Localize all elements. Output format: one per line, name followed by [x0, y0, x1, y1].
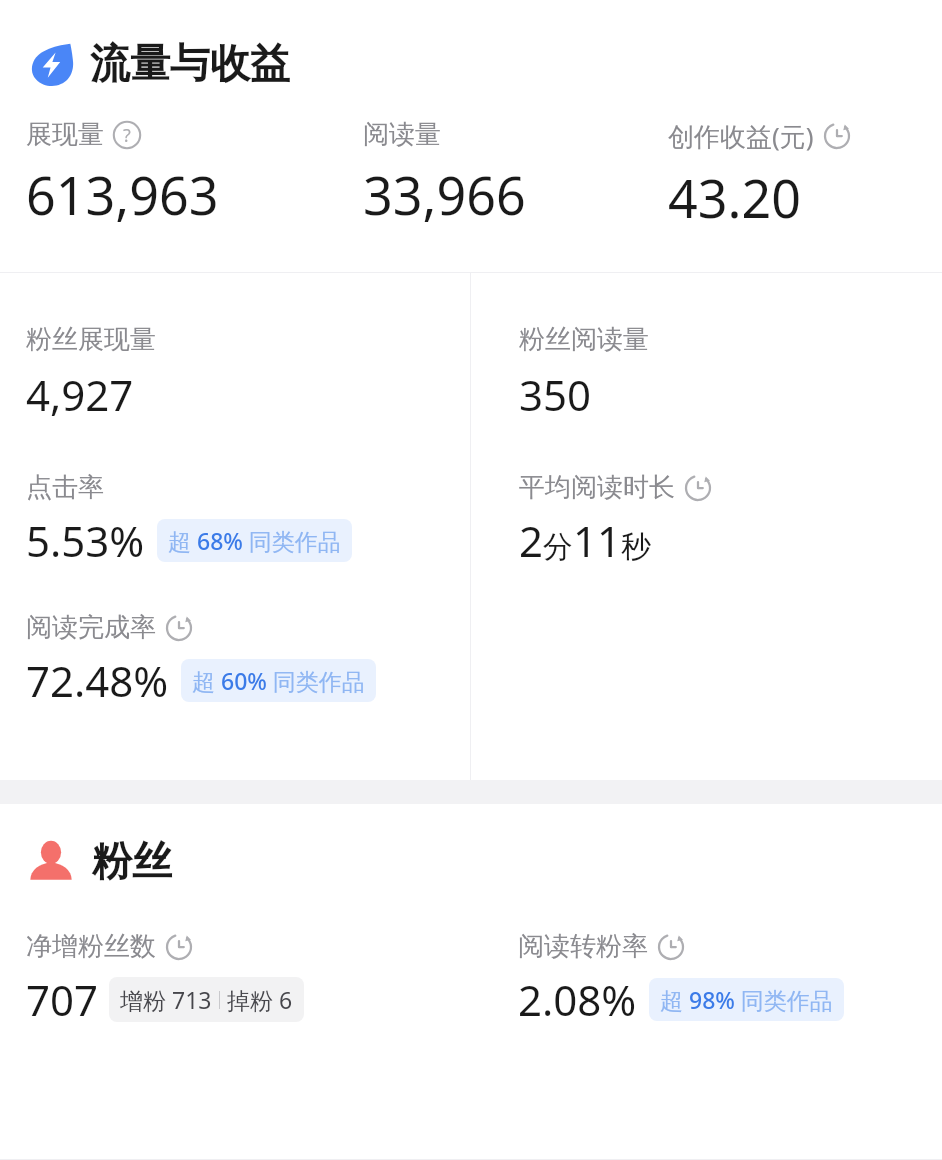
staticText: 33,966 [363, 159, 526, 230]
staticText: 流量与收益 [90, 38, 290, 88]
button[interactable]: 超 68% 同类作品 [157, 519, 352, 562]
staticText: 平均阅读时长 [519, 471, 675, 504]
other: 说明 [112, 120, 142, 150]
staticText: 展现量 [26, 118, 104, 151]
staticText: 2.08% [518, 971, 637, 1028]
staticText: 超 60% 同类作品 [192, 665, 365, 696]
staticText: 43.20 [668, 162, 801, 233]
staticText: 粉丝阅读量 [519, 323, 649, 356]
staticText: 粉丝 [92, 836, 172, 886]
staticText: 613,963 [26, 159, 219, 230]
button[interactable]: 超 98% 同类作品 [649, 978, 844, 1021]
button[interactable]: 超 60% 同类作品 [181, 659, 376, 702]
staticText: 超 68% 同类作品 [168, 525, 341, 556]
staticText: 创作收益(元) [668, 118, 814, 154]
staticText: 4,927 [26, 366, 134, 423]
staticText: 阅读转粉率 [518, 930, 648, 963]
staticText: 点击率 [26, 471, 104, 504]
staticText: 707 [26, 971, 99, 1028]
staticText: 净增粉丝数 [26, 930, 156, 963]
staticText: 阅读完成率 [26, 611, 156, 644]
staticText: 掉粉 6 [227, 984, 293, 1015]
staticText: 350 [519, 366, 592, 423]
button[interactable]: 增粉 713 [109, 977, 304, 1022]
staticText: 72.48% [26, 652, 169, 709]
staticText: 5.53% [26, 512, 145, 569]
staticText: 粉丝展现量 [26, 323, 156, 356]
other: 流量 [28, 40, 74, 86]
staticText: 阅读量 [363, 118, 441, 151]
staticText: ? [123, 123, 131, 148]
button[interactable]: 流量 [0, 0, 942, 88]
staticText: 增粉 713 [120, 984, 212, 1015]
button[interactable]: 粉丝 [0, 804, 942, 886]
staticText: 2分11秒 [519, 512, 652, 569]
staticText: 超 98% 同类作品 [660, 984, 833, 1015]
other: 粉丝 [28, 838, 74, 884]
